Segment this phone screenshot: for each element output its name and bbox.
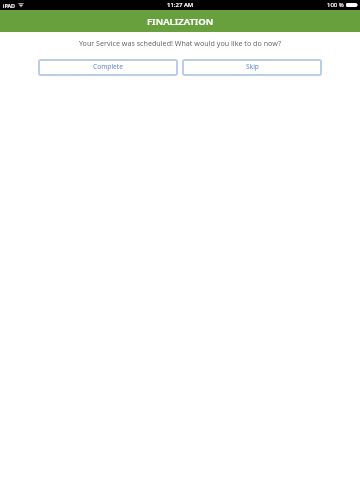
staticText: iPAD xyxy=(3,2,15,9)
other: Wi-Fi signal xyxy=(18,3,24,7)
staticText: 11:27 AM xyxy=(167,1,194,9)
staticText: Your Service was scheduled! What would y… xyxy=(0,38,360,48)
other: Battery full xyxy=(346,3,358,7)
button[interactable]: Complete xyxy=(38,59,178,76)
staticText: 100 % xyxy=(327,1,344,9)
staticText: FINALIZATION xyxy=(147,15,214,28)
button[interactable]: Skip xyxy=(182,59,322,76)
staticText: Skip xyxy=(246,62,259,71)
staticText: Complete xyxy=(93,62,123,71)
